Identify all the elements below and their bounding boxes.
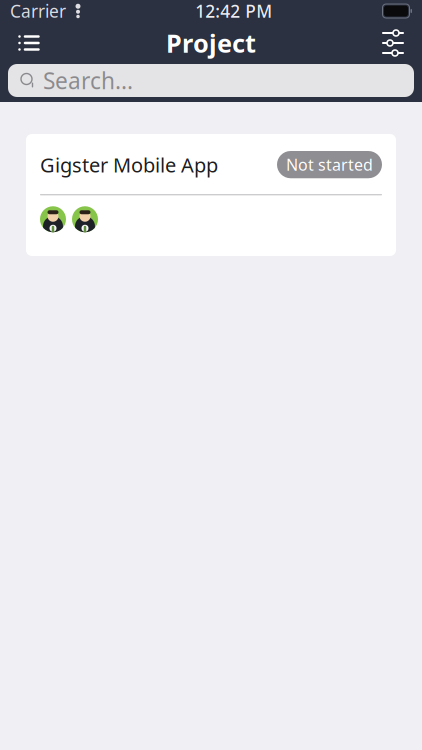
- button[interactable]: Menu: [6, 24, 52, 62]
- staticText: 12:42 PM: [195, 0, 272, 22]
- button[interactable]: Filter: [370, 23, 416, 62]
- staticText: Gigster Mobile App: [40, 151, 218, 178]
- staticText: Search...: [43, 65, 133, 95]
- staticText: Project: [166, 26, 256, 60]
- staticText: Carrier: [10, 0, 66, 22]
- button[interactable]: Gigster Mobile App: [26, 134, 396, 256]
- button[interactable]: Search...: [8, 64, 414, 97]
- staticText: Not started: [286, 154, 373, 175]
